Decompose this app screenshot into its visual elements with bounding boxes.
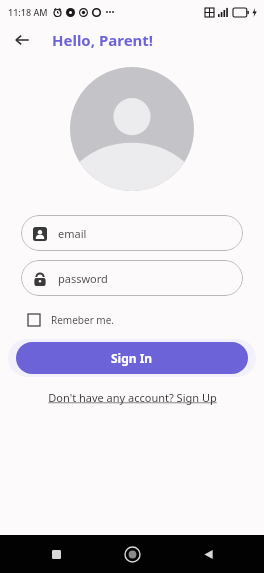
staticText: password: [58, 271, 108, 286]
button[interactable]: Remeber me.: [28, 313, 236, 327]
button[interactable]: Sign In: [16, 342, 248, 374]
button[interactable]: Home: [112, 535, 152, 573]
button[interactable]: email: [21, 215, 243, 251]
button[interactable]: Back: [188, 535, 228, 573]
staticText: Sign In: [111, 350, 153, 366]
button[interactable]: Back: [8, 26, 36, 54]
staticText: 11:18 AM: [8, 6, 48, 18]
button[interactable]: Recent apps: [36, 535, 76, 573]
button[interactable]: password: [21, 260, 243, 296]
staticText: Remeber me.: [51, 313, 115, 327]
button[interactable]: Don't have any account? Sign Up: [44, 388, 221, 407]
staticText: Hello, Parent!: [52, 30, 154, 50]
staticText: email: [58, 226, 87, 241]
